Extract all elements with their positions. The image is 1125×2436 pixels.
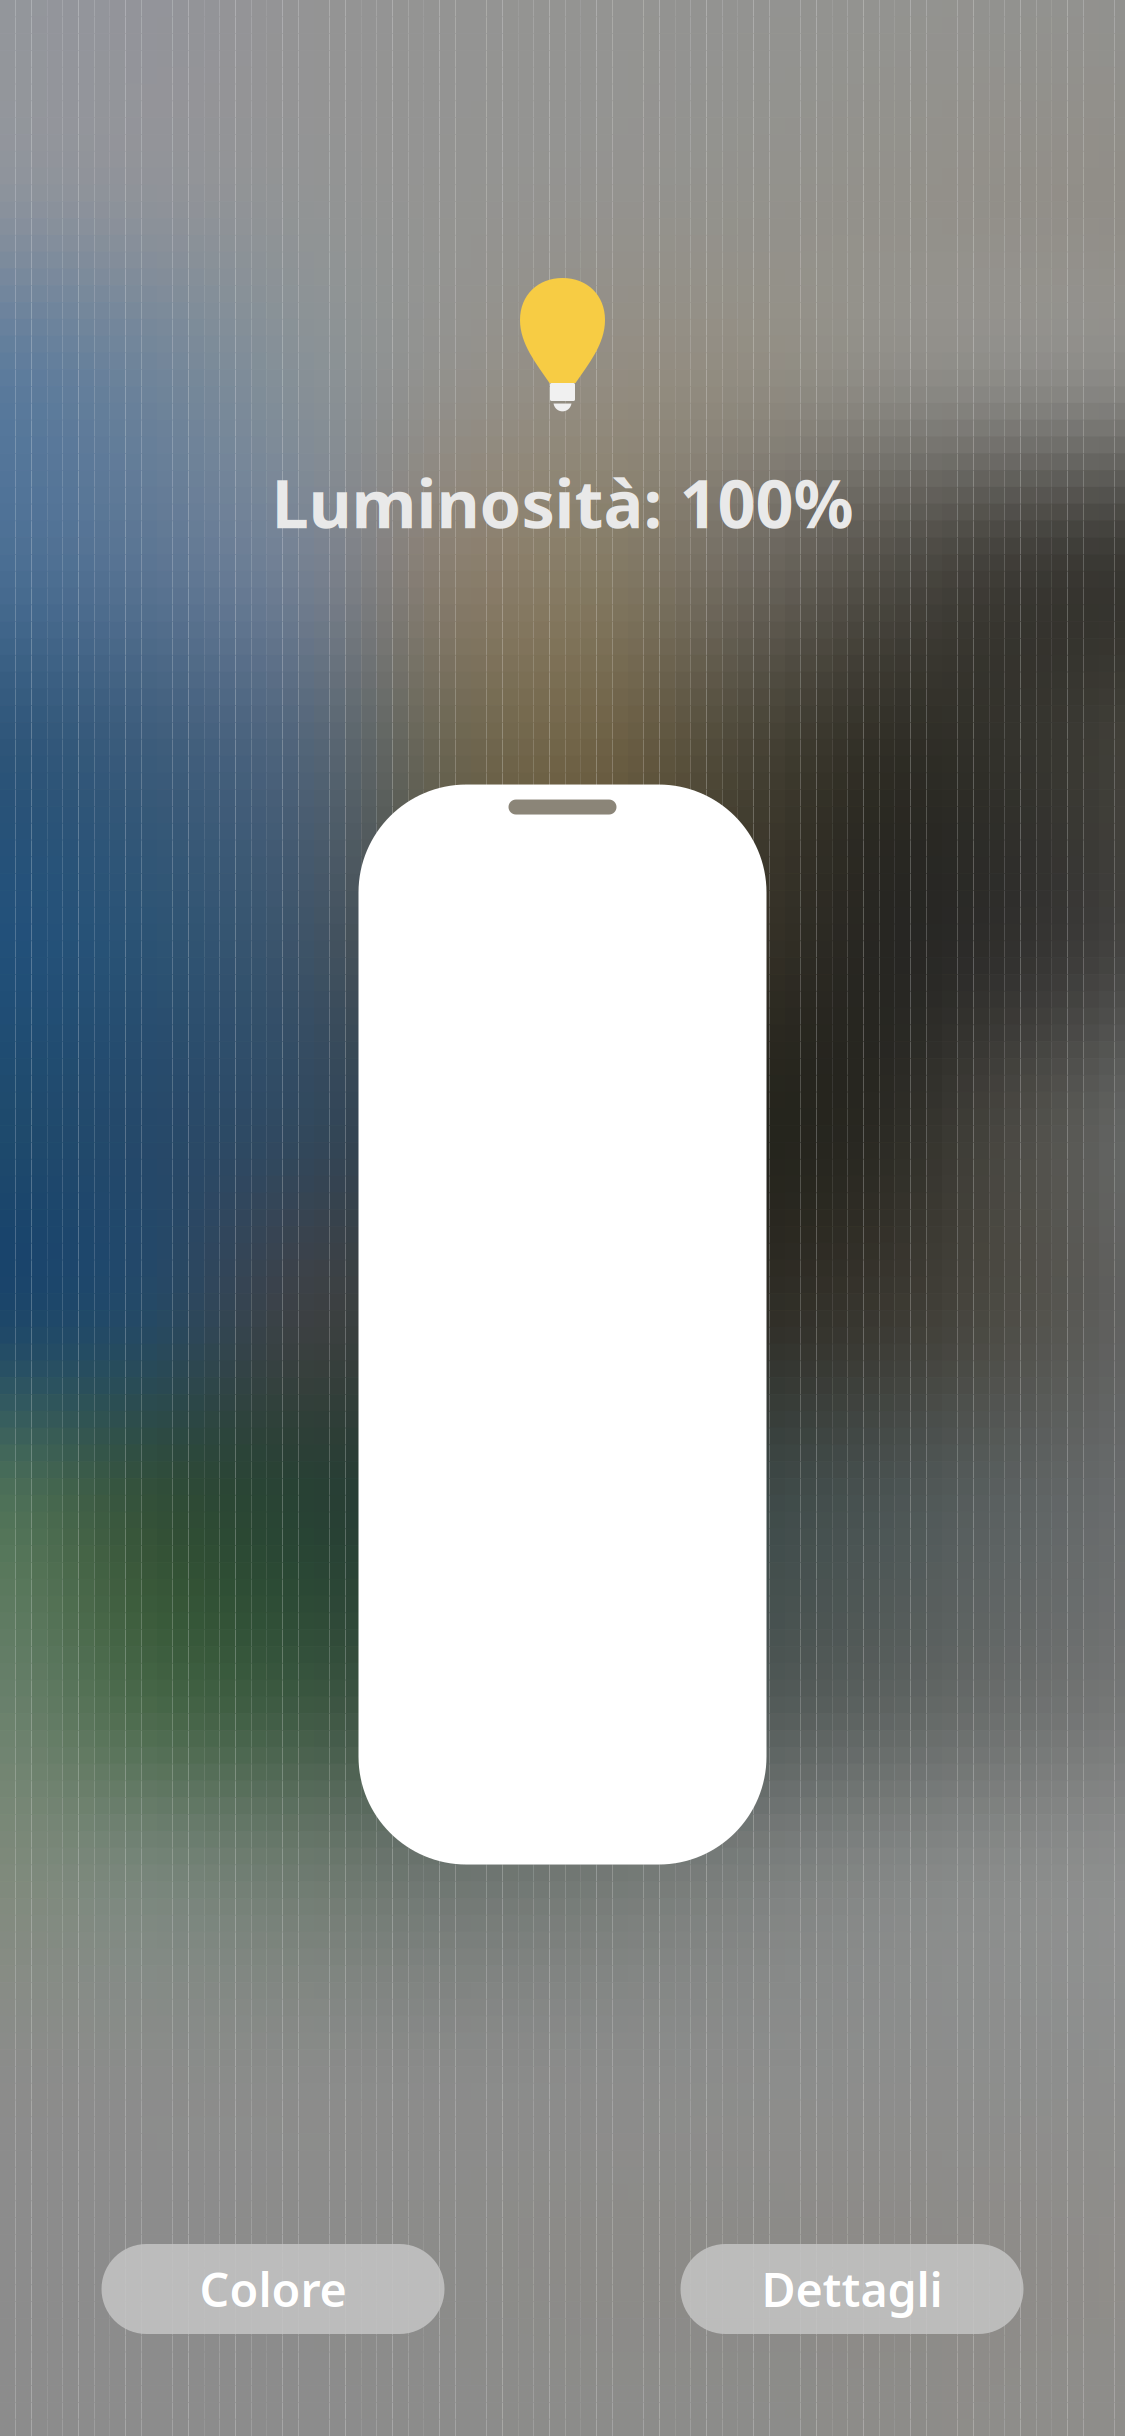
staticText: Dettagli	[761, 2258, 942, 2320]
button[interactable]: Colore	[101, 2244, 444, 2334]
button[interactable]: Dettagli	[680, 2244, 1023, 2334]
staticText: Colore	[199, 2258, 346, 2320]
staticText: Luminosità: 100%	[271, 458, 853, 546]
